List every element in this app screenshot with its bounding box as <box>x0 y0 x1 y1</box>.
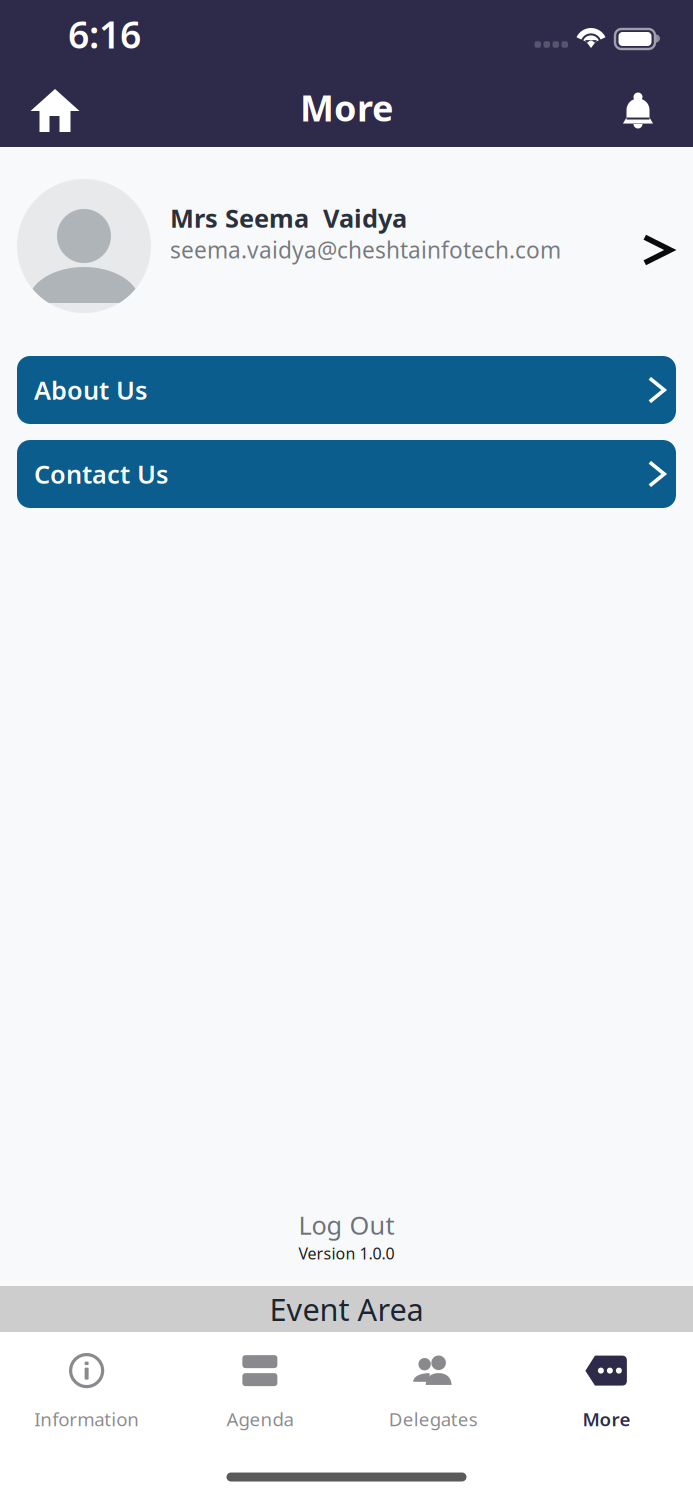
staticText: Contact Us <box>34 457 168 491</box>
staticText: More <box>300 84 393 131</box>
button[interactable]: Agenda <box>173 1344 346 1442</box>
staticText: About Us <box>34 373 147 407</box>
button[interactable]: Delegates <box>346 1344 520 1442</box>
button[interactable]: Notifications <box>607 75 669 139</box>
staticText: Version 1.0.0 <box>298 1243 394 1264</box>
button[interactable]: Mrs Seema Vaidya <box>0 147 693 335</box>
staticText: Delegates <box>389 1407 478 1431</box>
staticText: seema.vaidya@cheshtainfotech.com <box>170 235 561 265</box>
staticText: Agenda <box>226 1407 293 1431</box>
button[interactable]: Log Out <box>0 1206 693 1244</box>
button[interactable]: Home <box>24 75 86 139</box>
staticText: More <box>582 1407 630 1431</box>
button[interactable]: Information <box>0 1344 173 1442</box>
staticText: Information <box>34 1407 139 1431</box>
staticText: Mrs Seema Vaidya <box>170 201 407 235</box>
button[interactable]: About Us <box>0 356 693 424</box>
button[interactable]: Contact Us <box>0 440 693 508</box>
staticText: 6:16 <box>68 9 141 59</box>
staticText: Event Area <box>269 1289 423 1329</box>
button[interactable]: More <box>520 1344 693 1442</box>
staticText: Log Out <box>298 1208 394 1242</box>
